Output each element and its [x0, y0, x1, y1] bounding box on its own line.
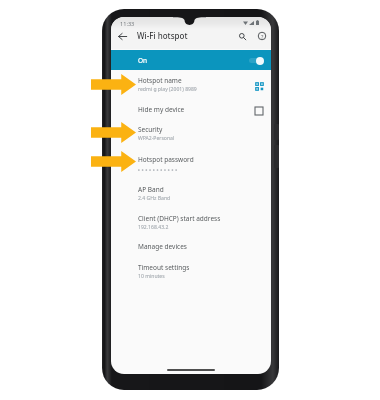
button[interactable]: Hide my device checkbox — [251, 103, 267, 119]
button[interactable]: Back — [115, 29, 129, 43]
staticText: Hide my device — [138, 105, 185, 114]
staticText: WPA2-Personal — [138, 135, 175, 142]
staticText: Hotspot password — [138, 155, 194, 164]
button[interactable]: Search — [235, 29, 249, 43]
staticText: 192.168.43.2 — [138, 224, 169, 231]
staticText: ? — [261, 33, 264, 40]
staticText: redmi g play (2001) 8989 — [138, 86, 197, 93]
staticText: On — [138, 56, 148, 65]
button[interactable]: Show QR code — [251, 78, 267, 94]
staticText: 11:33 — [120, 20, 135, 28]
staticText: Wi-Fi hotspot — [137, 30, 188, 41]
button[interactable]: Help — [255, 29, 269, 43]
staticText: Security — [138, 125, 163, 134]
staticText: 10 minutes — [138, 273, 165, 280]
staticText: 2.4 GHz Band — [138, 195, 171, 202]
staticText: Client (DHCP) start address — [138, 214, 221, 223]
staticText: Manage devices — [138, 242, 187, 251]
staticText: Hotspot name — [138, 76, 182, 85]
staticText: AP Band — [138, 185, 164, 194]
staticText: Timeout settings — [138, 263, 190, 272]
button[interactable]: On — [111, 50, 271, 70]
